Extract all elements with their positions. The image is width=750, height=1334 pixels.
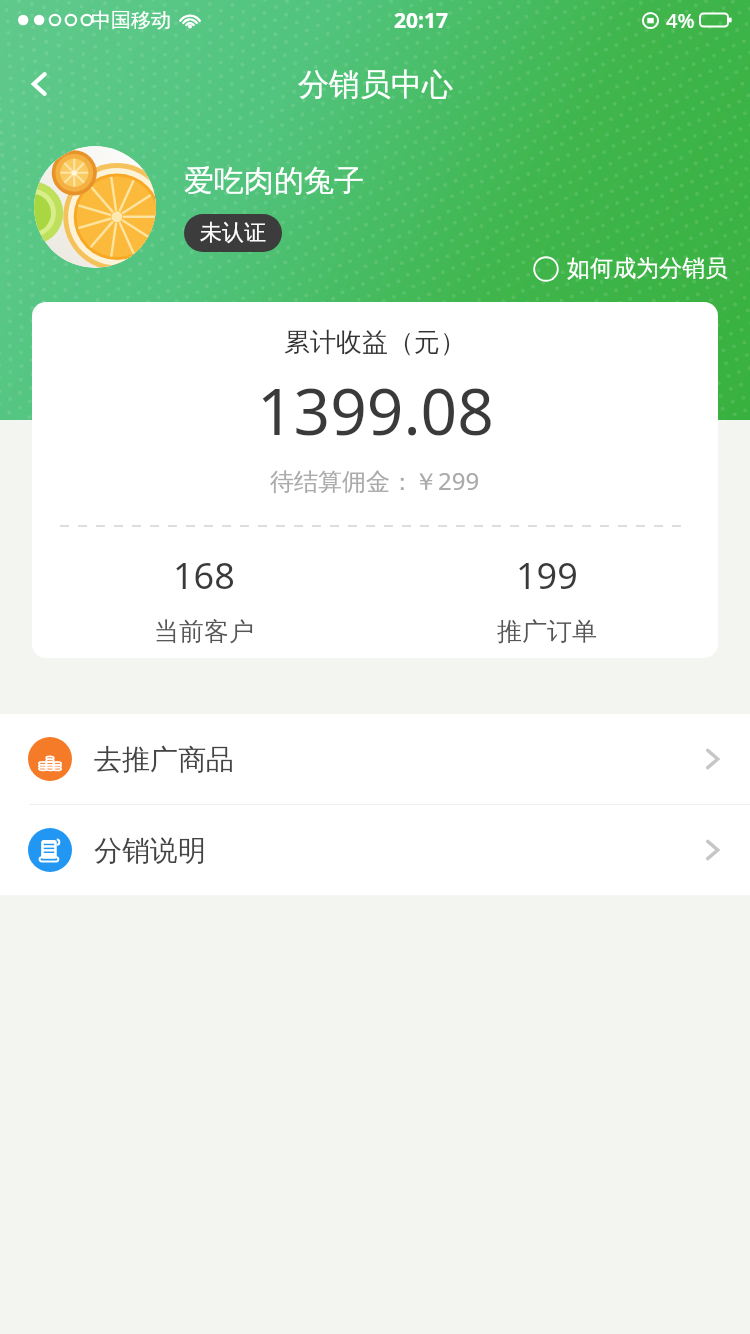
button[interactable] xyxy=(34,146,156,268)
staticText: 分销员中心 xyxy=(298,65,453,104)
button[interactable]: 未认证 xyxy=(184,214,282,252)
staticText: 168 xyxy=(173,551,235,600)
button[interactable]: 分销说明 xyxy=(0,805,750,895)
staticText: 推广订单 xyxy=(497,616,597,647)
button[interactable]: Back xyxy=(10,54,70,114)
staticText: 1399.08 xyxy=(257,367,494,454)
staticText: 分销说明 xyxy=(94,833,206,868)
button[interactable]: 168 xyxy=(32,551,375,647)
button[interactable]: 如何成为分销员 xyxy=(529,250,732,287)
staticText: 4% xyxy=(666,7,695,34)
staticText: 当前客户 xyxy=(154,616,254,647)
staticText: 中国移动 xyxy=(91,8,171,33)
button[interactable]: 去推广商品 xyxy=(0,714,750,804)
staticText: 未认证 xyxy=(200,219,266,247)
staticText: 爱吃肉的兔子 xyxy=(184,162,364,200)
button[interactable]: 199 xyxy=(375,551,718,647)
staticText: 199 xyxy=(516,551,578,600)
staticText: 累计收益（元） xyxy=(284,326,466,359)
staticText: 如何成为分销员 xyxy=(567,254,728,283)
staticText: 去推广商品 xyxy=(94,742,234,777)
staticText: 待结算佣金：￥299 xyxy=(270,464,480,497)
staticText: 20:17 xyxy=(394,6,448,35)
button[interactable]: 累计收益（元） xyxy=(32,302,718,658)
